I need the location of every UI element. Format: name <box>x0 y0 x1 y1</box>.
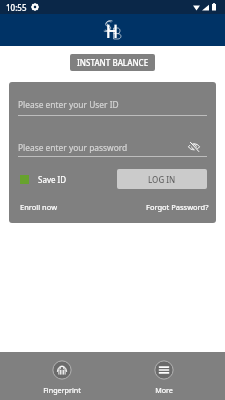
button[interactable]: Save ID <box>20 174 67 185</box>
staticText: Please enter your password <box>18 142 193 153</box>
button[interactable]: Fingerprint <box>37 352 87 395</box>
staticText: Save ID <box>38 174 67 185</box>
staticText: INSTANT BALANCE <box>77 57 149 68</box>
button[interactable]: Forgot Password? <box>146 202 209 212</box>
staticText: Please enter your User ID <box>18 99 119 110</box>
button[interactable]: Show password <box>187 140 201 154</box>
button[interactable]: INSTANT BALANCE <box>70 54 155 71</box>
staticText: More <box>155 385 173 395</box>
staticText: LOG IN <box>148 174 176 185</box>
staticText: 10:55 <box>6 2 27 13</box>
button[interactable]: LOG IN <box>117 169 207 189</box>
button[interactable]: Enroll now <box>20 202 58 212</box>
staticText: Fingerprint <box>43 385 81 395</box>
button[interactable]: More <box>139 352 189 395</box>
